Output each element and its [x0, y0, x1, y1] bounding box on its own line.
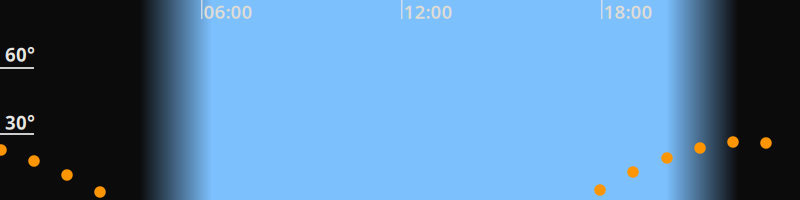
staticText: 12:00: [403, 0, 452, 24]
staticText: 30°: [5, 110, 35, 135]
staticText: 06:00: [203, 0, 252, 24]
staticText: 18:00: [603, 0, 652, 24]
staticText: 60°: [5, 42, 35, 67]
